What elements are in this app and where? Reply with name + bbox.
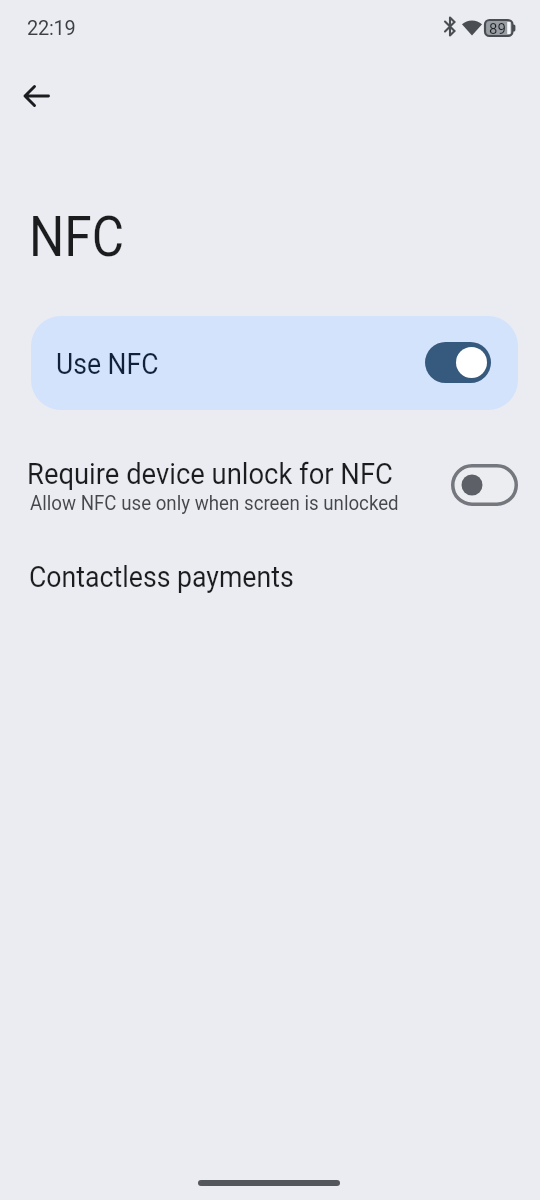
staticText: NFC	[29, 205, 124, 269]
staticText: Contactless payments	[29, 560, 294, 594]
staticText: 22:19	[27, 16, 76, 39]
button[interactable]: Use NFC	[31, 316, 518, 410]
staticText: 89	[489, 20, 506, 38]
button[interactable]	[16, 76, 56, 116]
staticText: Allow NFC use only when screen is unlock…	[30, 491, 400, 515]
staticText: Require device unlock for NFC	[27, 457, 394, 491]
staticText: Use NFC	[56, 347, 158, 381]
button[interactable]: Contactless payments	[0, 547, 540, 607]
button[interactable]: Require device unlock for NFC	[0, 444, 540, 530]
